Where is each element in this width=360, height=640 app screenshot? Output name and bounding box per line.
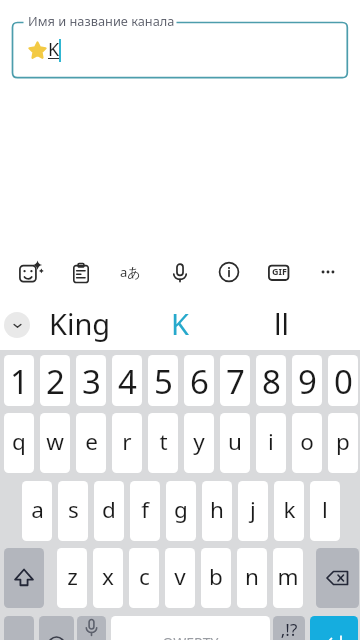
staticText: u [228, 426, 242, 457]
staticText: 0 [334, 359, 353, 404]
staticText: n [245, 561, 259, 592]
button[interactable]: 9 [292, 355, 322, 406]
button[interactable]: More options [312, 256, 344, 288]
button[interactable]: ll [256, 303, 307, 349]
button[interactable]: Shift [4, 548, 44, 608]
staticText: v [174, 561, 186, 592]
button[interactable]: m [273, 548, 303, 608]
staticText: j [250, 494, 256, 525]
button[interactable]: Backspace [316, 548, 359, 608]
staticText: r [122, 426, 132, 457]
staticText: 1 [10, 359, 29, 404]
button[interactable]: Stickers [14, 256, 46, 288]
button[interactable]: u [220, 413, 250, 473]
button[interactable]: Expand suggestions [4, 312, 30, 338]
staticText: i [268, 426, 274, 457]
button[interactable]: c [129, 548, 159, 608]
staticText: q [12, 426, 26, 457]
staticText: o [300, 426, 314, 457]
staticText: ,!? [273, 618, 305, 640]
button[interactable]: 5 [148, 355, 178, 406]
button[interactable]: r [112, 413, 142, 473]
staticText: 6 [190, 359, 209, 404]
staticText: g [174, 494, 188, 525]
staticText: k [283, 494, 296, 525]
staticText: d [102, 494, 116, 525]
staticText: x [102, 561, 114, 592]
button[interactable]: 1 [4, 355, 34, 406]
staticText: K [171, 304, 189, 343]
staticText: c [139, 561, 150, 592]
button[interactable]: v [165, 548, 195, 608]
button[interactable]: x [93, 548, 123, 608]
staticText: QWERTY [111, 633, 270, 640]
button[interactable]: t [148, 413, 178, 473]
button[interactable]: a [22, 481, 52, 541]
staticText: h [210, 494, 224, 525]
button[interactable]: Emoji [39, 616, 74, 640]
button[interactable]: l [310, 481, 340, 541]
staticText: l [322, 494, 328, 525]
button[interactable]: p [328, 413, 358, 473]
button[interactable]: d [94, 481, 124, 541]
button[interactable]: Enter [310, 616, 358, 640]
button[interactable]: 3 [76, 355, 106, 406]
button[interactable]: q [4, 413, 34, 473]
button[interactable]: Channel name field [0, 0, 360, 640]
staticText: t [159, 426, 168, 457]
button[interactable]: Space [111, 616, 270, 640]
button[interactable]: i [256, 413, 286, 473]
staticText: 2 [46, 359, 65, 404]
button[interactable]: w [40, 413, 70, 473]
staticText: e [85, 426, 98, 457]
staticText: Имя и название канала [28, 12, 175, 29]
staticText: y [193, 426, 205, 457]
button[interactable]: j [238, 481, 268, 541]
staticText: GIF [270, 265, 289, 277]
button[interactable]: 8 [256, 355, 286, 406]
button[interactable]: 7 [220, 355, 250, 406]
button[interactable]: f [130, 481, 160, 541]
staticText: King [49, 304, 111, 343]
button[interactable]: 4 [112, 355, 142, 406]
button[interactable]: Symbols [4, 616, 34, 640]
staticText: ll [274, 304, 289, 343]
staticText: 5 [154, 359, 173, 404]
button[interactable]: King [30, 303, 129, 349]
staticText: 3 [82, 359, 101, 404]
button[interactable]: 0 [328, 355, 358, 406]
staticText: p [336, 426, 350, 457]
button[interactable]: GIF [263, 256, 295, 288]
button[interactable]: 6 [184, 355, 214, 406]
staticText: 4 [118, 359, 137, 404]
staticText: 7 [226, 359, 245, 404]
button[interactable]: g [166, 481, 196, 541]
staticText: z [67, 561, 78, 592]
button[interactable]: Clipboard [65, 256, 97, 288]
button[interactable]: b [201, 548, 231, 608]
button[interactable]: z [57, 548, 87, 608]
button[interactable]: 2 [40, 355, 70, 406]
button[interactable]: e [76, 413, 106, 473]
button[interactable]: o [292, 413, 322, 473]
staticText: b [209, 561, 223, 592]
button[interactable]: Voice input [77, 616, 106, 640]
button[interactable]: y [184, 413, 214, 473]
button[interactable]: Information [213, 256, 245, 288]
staticText: s [68, 494, 79, 525]
staticText: a [31, 494, 44, 525]
button[interactable]: Punctuation [273, 616, 305, 640]
staticText: m [277, 561, 299, 592]
staticText: 9 [298, 359, 317, 404]
button[interactable]: n [237, 548, 267, 608]
staticText: f [141, 494, 149, 525]
staticText: w [46, 426, 64, 457]
staticText: 8 [262, 359, 281, 404]
button[interactable]: Switch language [114, 256, 146, 288]
button[interactable]: Voice input [164, 256, 196, 288]
button[interactable]: K [151, 303, 208, 349]
button[interactable]: s [58, 481, 88, 541]
button[interactable]: k [274, 481, 304, 541]
staticText: K [48, 37, 60, 62]
button[interactable]: h [202, 481, 232, 541]
